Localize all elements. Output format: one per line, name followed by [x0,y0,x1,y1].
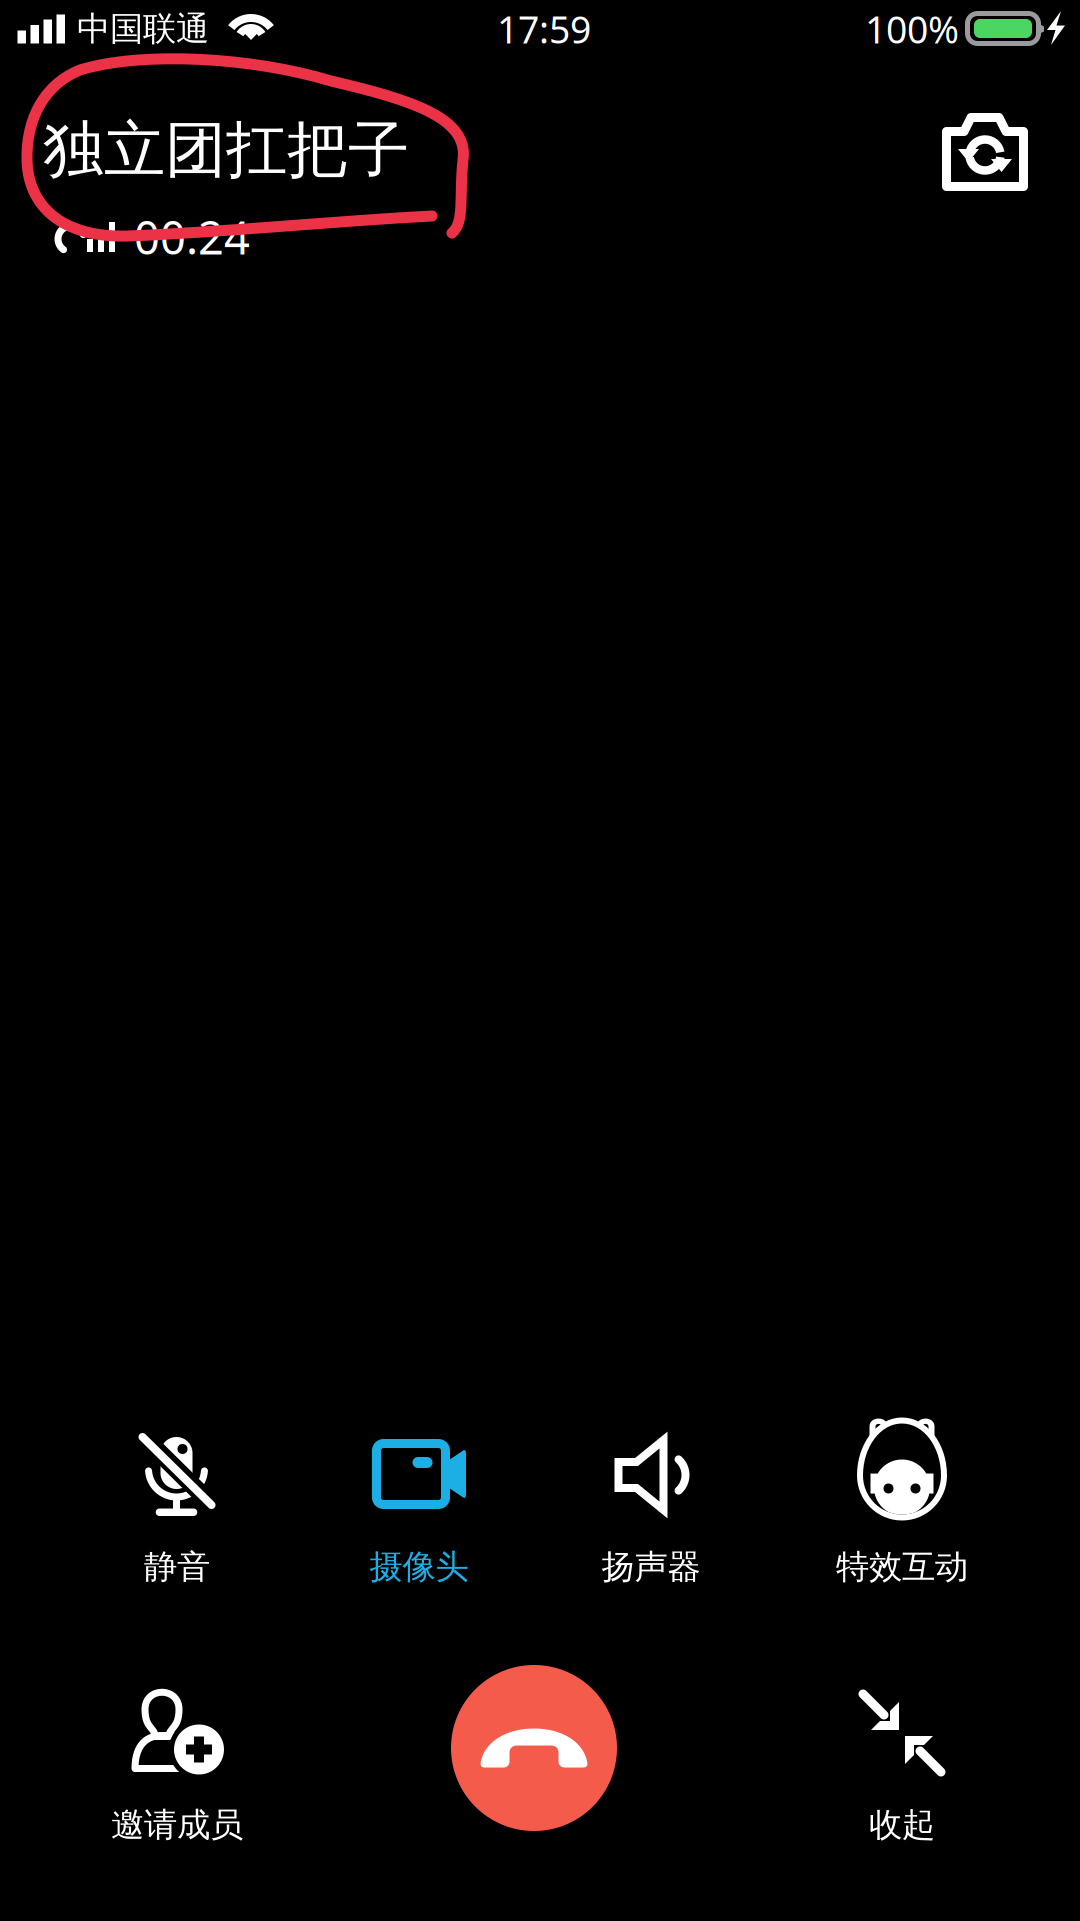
staticText: 中国联通 [77,8,209,49]
button[interactable]: 收起 [787,1679,1017,1869]
staticText: 摄像头 [369,1546,468,1587]
staticText: 独立团扛把子 [43,112,409,188]
button[interactable]: 静音 [62,1421,292,1611]
button[interactable]: Switch camera [942,113,1028,191]
button[interactable]: 摄像头 [304,1421,534,1611]
staticText: 17:59 [497,4,591,54]
staticText: 收起 [869,1804,935,1845]
button[interactable]: End call [451,1665,617,1831]
staticText: 00:24 [134,207,250,267]
staticText: 100% [865,4,959,54]
staticText: 特效互动 [836,1546,968,1587]
button[interactable]: 扬声器 [536,1421,766,1611]
button[interactable]: 邀请成员 [62,1679,292,1869]
staticText: 静音 [144,1546,210,1587]
staticText: 邀请成员 [111,1804,243,1845]
staticText: 扬声器 [601,1546,700,1587]
button[interactable]: 特效互动 [787,1421,1017,1611]
